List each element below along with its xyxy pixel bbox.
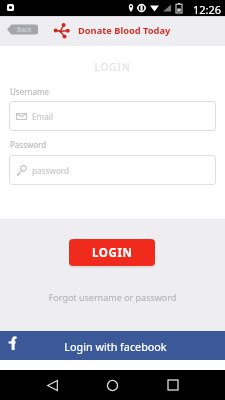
button[interactable]: Forgot username or password (0, 291, 225, 303)
button[interactable]: Home (100, 373, 124, 397)
button[interactable]: Back (40, 373, 64, 397)
staticText: Login with facebook (3, 339, 225, 354)
staticText: Email (32, 111, 54, 122)
staticText: 12:26 (193, 2, 222, 17)
staticText: LOGIN (92, 245, 133, 261)
button[interactable]: Facebook (0, 331, 225, 360)
staticText: Password (10, 139, 47, 150)
staticText: Donate Blood Today (78, 24, 171, 37)
button[interactable]: Back (7, 24, 38, 35)
staticText: password (32, 165, 70, 176)
button[interactable]: password (9, 155, 216, 185)
button[interactable]: LOGIN (69, 239, 155, 266)
staticText: Back (17, 25, 32, 34)
button[interactable]: Email (9, 101, 216, 131)
staticText: LOGIN (0, 60, 225, 74)
other: Facebook (8, 336, 17, 350)
staticText: Username (10, 86, 49, 97)
button[interactable]: Recent apps (161, 373, 185, 397)
